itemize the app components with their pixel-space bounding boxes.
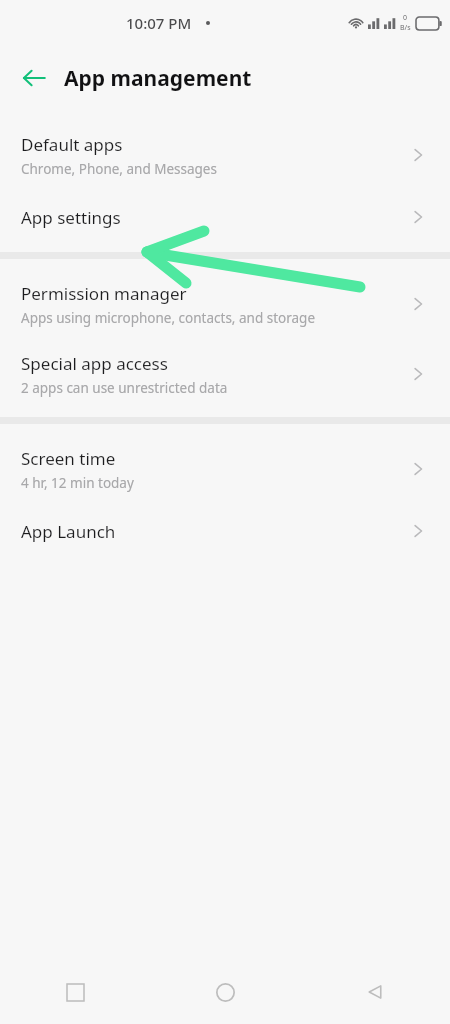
staticText: Screen time: [21, 447, 116, 470]
button[interactable]: Default apps: [0, 120, 450, 190]
staticText: Chrome, Phone, and Messages: [21, 160, 217, 178]
button[interactable]: Screen time: [0, 434, 450, 504]
button[interactable]: Home: [150, 960, 300, 1024]
button[interactable]: Special app access: [0, 339, 450, 409]
button[interactable]: Recent apps: [0, 960, 150, 1024]
button[interactable]: App settings: [0, 190, 450, 244]
button[interactable]: Back: [300, 960, 450, 1024]
staticText: 0: [403, 13, 408, 23]
staticText: Permission manager: [21, 282, 187, 305]
staticText: Apps using microphone, contacts, and sto…: [21, 309, 316, 327]
staticText: B/s: [400, 23, 411, 33]
button[interactable]: Back: [10, 54, 58, 102]
staticText: App Launch: [21, 520, 116, 543]
staticText: Special app access: [21, 352, 168, 375]
staticText: App management: [64, 64, 252, 93]
staticText: App settings: [21, 206, 121, 229]
staticText: Default apps: [21, 133, 123, 156]
staticText: 4 hr, 12 min today: [21, 474, 134, 492]
staticText: 2 apps can use unrestricted data: [21, 379, 228, 397]
button[interactable]: Permission manager: [0, 269, 450, 339]
staticText: 10:07 PM: [126, 13, 192, 33]
button[interactable]: App Launch: [0, 504, 450, 558]
